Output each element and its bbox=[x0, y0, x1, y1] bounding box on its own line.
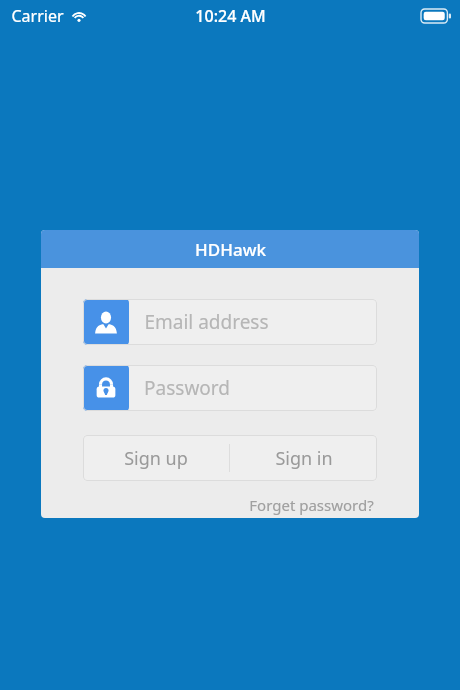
staticText: Sign in bbox=[275, 446, 333, 471]
staticText: Carrier bbox=[11, 5, 64, 27]
button[interactable]: Password bbox=[83, 365, 377, 411]
button[interactable]: Email address bbox=[83, 299, 377, 345]
button[interactable]: Sign in bbox=[230, 435, 377, 481]
staticText: 10:24 AM bbox=[195, 5, 266, 27]
staticText: Sign up bbox=[124, 446, 188, 471]
staticText: Email address bbox=[144, 309, 269, 335]
staticText: Password bbox=[144, 375, 230, 401]
staticText: Forget password? bbox=[249, 495, 374, 515]
button[interactable]: Sign up bbox=[83, 435, 229, 481]
button[interactable]: Forget password? bbox=[246, 492, 377, 518]
staticText: HDHawk bbox=[195, 238, 266, 261]
